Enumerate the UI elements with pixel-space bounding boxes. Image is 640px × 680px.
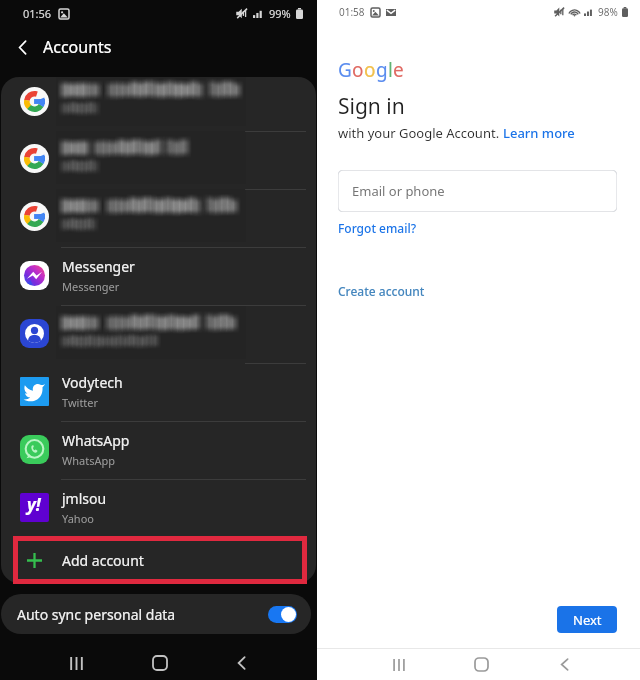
button[interactable] [1,306,316,363]
staticText: Forgot email? [338,220,417,236]
button[interactable]: Messenger [1,247,316,304]
button[interactable]: Recent apps [370,649,427,680]
staticText: 01:56 [23,6,52,21]
staticText: 98% [598,5,618,19]
staticText: Auto sync personal data [17,605,176,624]
button[interactable]: Auto sync personal data [1,594,311,634]
staticText: jmlsou [62,489,107,508]
staticText: G [338,57,352,83]
button[interactable] [1,77,316,131]
button[interactable]: Forgot email? [338,220,417,236]
staticText: Vodytech [62,373,123,392]
staticText: with your Google Account. [338,124,503,142]
staticText: WhatsApp [62,453,115,468]
button[interactable]: Next [557,606,617,633]
staticText: Next [573,611,602,629]
staticText: o [364,57,376,83]
staticText: g [376,57,388,83]
button[interactable] [1,190,316,247]
button[interactable]: WhatsApp [1,421,316,478]
button[interactable]: Home [453,649,510,680]
staticText: Learn more [503,124,575,142]
button[interactable]: Home [131,646,188,680]
button[interactable]: Back [213,646,270,680]
staticText: Accounts [43,36,112,58]
button[interactable]: Back [0,26,44,68]
staticText: 99% [269,6,291,21]
staticText: l [388,57,393,83]
staticText: Create account [338,283,425,299]
staticText: 01:58 [339,5,365,19]
button[interactable]: Add account [1,537,316,583]
staticText: Messenger [62,257,135,276]
staticText: e [393,57,404,83]
button[interactable]: Vodytech [1,363,316,420]
staticText: Sign in [338,92,405,121]
button[interactable] [1,132,316,189]
staticText: Add account [62,551,144,570]
staticText: WhatsApp [62,431,130,450]
button[interactable]: Create account [338,283,425,299]
button[interactable]: Email or phone [338,170,617,212]
button[interactable]: Learn more [503,124,575,142]
staticText: Messenger [62,279,120,294]
staticText: Twitter [62,395,99,410]
staticText: o [352,57,364,83]
button[interactable]: Back [536,649,593,680]
button[interactable]: Recent apps [48,646,105,680]
staticText: Yahoo [62,511,94,526]
staticText: y! [27,493,41,516]
button[interactable]: y! [1,479,316,536]
staticText: Email or phone [352,182,445,200]
